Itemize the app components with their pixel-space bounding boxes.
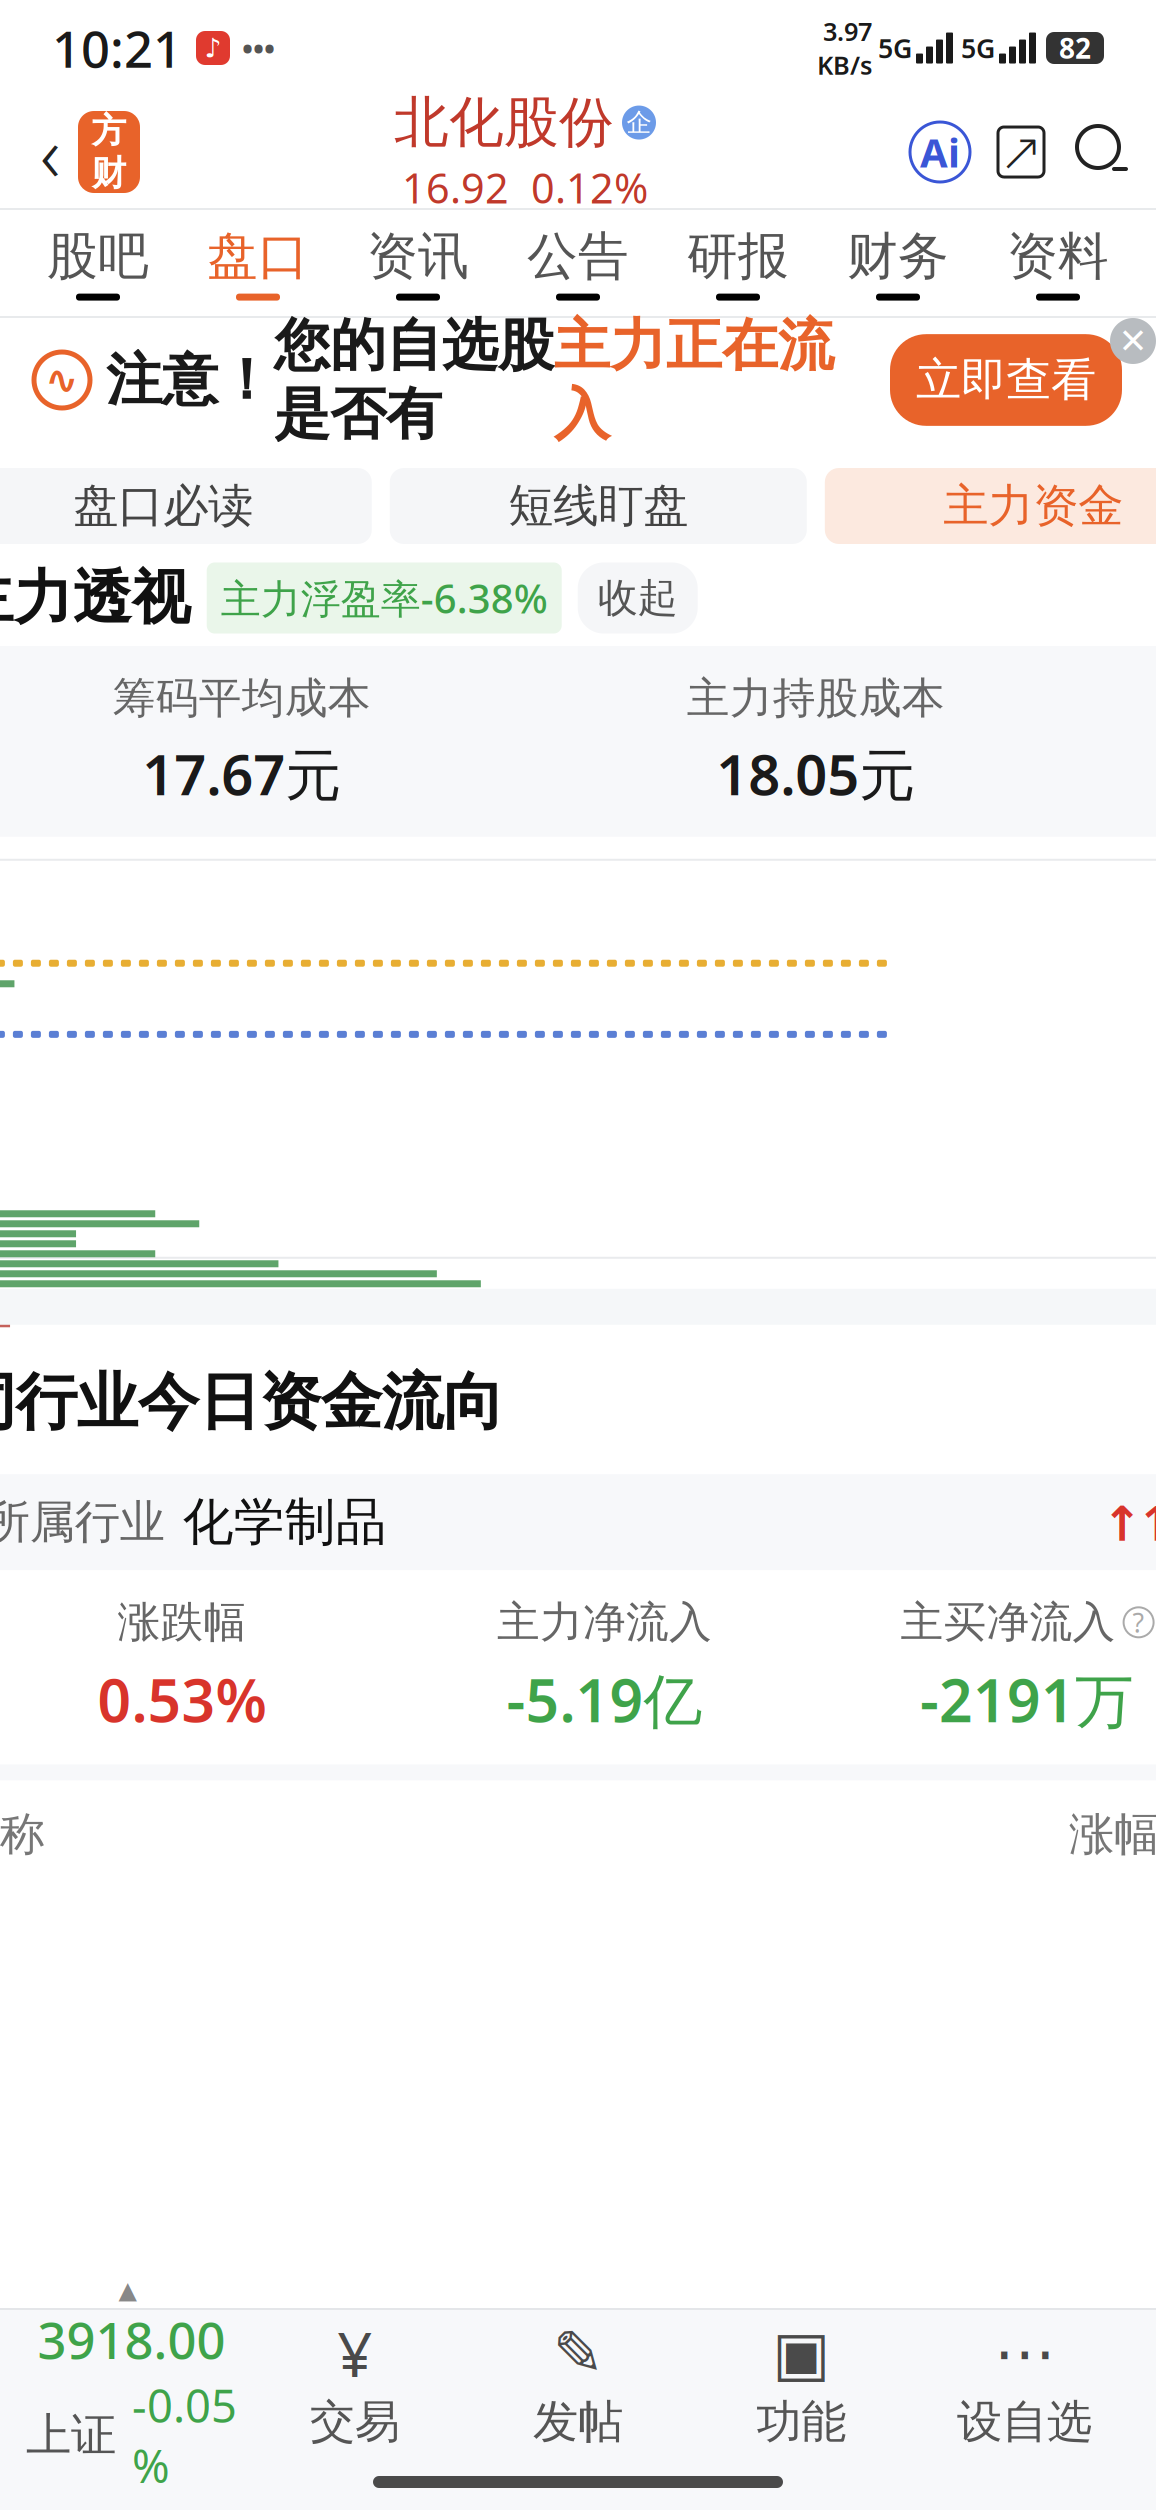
button[interactable]: 主力资金 (825, 468, 1156, 544)
button[interactable]: 涨幅 (1069, 1807, 1156, 1862)
button[interactable]: 盘口 (178, 210, 338, 316)
staticText: 涨跌幅 (117, 1596, 246, 1648)
staticText: 研报 (687, 225, 789, 288)
staticText: 名称 (0, 1807, 45, 1862)
staticText: 您的自选股是否有 (274, 311, 554, 449)
staticText: 北化股份 (394, 89, 614, 156)
staticText: 短线盯盘 (508, 478, 688, 534)
staticText: 设自选 (957, 2394, 1092, 2450)
button[interactable]: 上证指数 (20, 2276, 243, 2495)
staticText: 功能 (756, 2394, 846, 2450)
staticText: ? (1133, 1605, 1145, 1640)
staticText: -5.19亿 (506, 1660, 702, 1738)
staticText: 公告 (527, 225, 629, 288)
staticText: Ai (920, 125, 960, 178)
button[interactable]: 收起 (578, 562, 698, 633)
staticText: 3.97 (823, 14, 872, 48)
staticText: 3918.00 (38, 2306, 226, 2373)
staticText: 资讯 (367, 225, 469, 288)
button[interactable]: 东方财富 (78, 111, 140, 193)
staticText: ‹ (40, 101, 60, 203)
staticText: 主力净流入 (497, 1596, 712, 1648)
staticText: ♪ (204, 33, 221, 63)
staticText: 16.92 (402, 160, 509, 215)
staticText: 注意！ (106, 346, 274, 414)
staticText: 主力浮盈率-6.38% (221, 571, 548, 624)
staticText: 82 (1059, 29, 1091, 67)
button[interactable]: 分享 (990, 121, 1052, 183)
staticText: 主力透视 (0, 562, 191, 634)
staticText: ✕ (1118, 321, 1147, 361)
staticText: 主力资金 (943, 478, 1123, 534)
staticText: KB/s (817, 48, 872, 82)
staticText: ••• (242, 28, 275, 67)
button[interactable]: ▣ (690, 2322, 913, 2450)
staticText: 0.53% (97, 1660, 266, 1738)
button[interactable]: ⋯ (913, 2322, 1136, 2450)
staticText: 所属行业 (0, 1494, 165, 1550)
staticText: ▲ (119, 2276, 137, 2304)
staticText: 财务 (847, 225, 949, 288)
button[interactable]: 关闭 (1110, 318, 1156, 364)
staticText: 主力持股成本 (687, 672, 945, 724)
staticText: 盘口 (207, 225, 309, 288)
staticText: 股吧 (47, 225, 149, 288)
staticText: 主买净流入 (901, 1596, 1116, 1648)
staticText: 17.67元 (142, 736, 341, 811)
button[interactable]: 资讯 (338, 210, 498, 316)
staticText: ↗ (998, 122, 1043, 182)
staticText: 筹码平均成本 (113, 672, 371, 724)
staticText: ↑102 (1102, 1490, 1156, 1554)
button[interactable]: 短线盯盘 (390, 468, 807, 544)
staticText: 0.12% (531, 160, 648, 215)
staticText: 10:21 (52, 14, 182, 82)
button[interactable]: 财务 (818, 210, 978, 316)
staticText: ⋯ (994, 2318, 1055, 2388)
button[interactable]: 股吧 (18, 210, 178, 316)
staticText: 18.05元 (716, 736, 915, 811)
staticText: 主力正在流入 (554, 311, 834, 449)
button[interactable]: 研报 (658, 210, 818, 316)
button[interactable]: 公告 (498, 210, 658, 316)
staticText: 发帖 (533, 2394, 623, 2450)
staticText: 交易 (310, 2394, 400, 2450)
staticText: ✎ (552, 2318, 603, 2388)
button[interactable]: AI 助手 (910, 122, 970, 182)
button[interactable]: 搜索 (1072, 121, 1134, 183)
staticText: 涨幅 (1069, 1807, 1156, 1862)
staticText: 同行业今日资金流向 (0, 1365, 504, 1440)
staticText: 财富 (91, 152, 126, 237)
staticText: ¥ (337, 2312, 372, 2394)
staticText: 5G (961, 30, 995, 66)
staticText: 企 (626, 107, 651, 138)
staticText: 东方 (91, 67, 126, 152)
staticText: 化学制品 (183, 1491, 387, 1553)
staticText: 上证 (26, 2407, 116, 2463)
button[interactable]: ✎ (466, 2322, 690, 2450)
staticText: -0.05% (132, 2375, 237, 2495)
staticText: ∿ (45, 357, 79, 403)
staticText: 收起 (598, 573, 678, 622)
staticText: -2191万 (920, 1660, 1134, 1738)
button[interactable]: 资料 (978, 210, 1138, 316)
staticText: 盘口必读 (73, 478, 253, 534)
button[interactable]: ∿ (0, 318, 1156, 442)
button[interactable]: ¥ (243, 2322, 466, 2450)
staticText: 立即查看 (916, 352, 1096, 408)
button[interactable]: 返回 (22, 110, 78, 194)
button[interactable]: 盘口必读 (0, 468, 372, 544)
staticText: 5G (878, 30, 912, 66)
staticText: 资料 (1007, 225, 1109, 288)
staticText: ▣ (772, 2318, 830, 2388)
